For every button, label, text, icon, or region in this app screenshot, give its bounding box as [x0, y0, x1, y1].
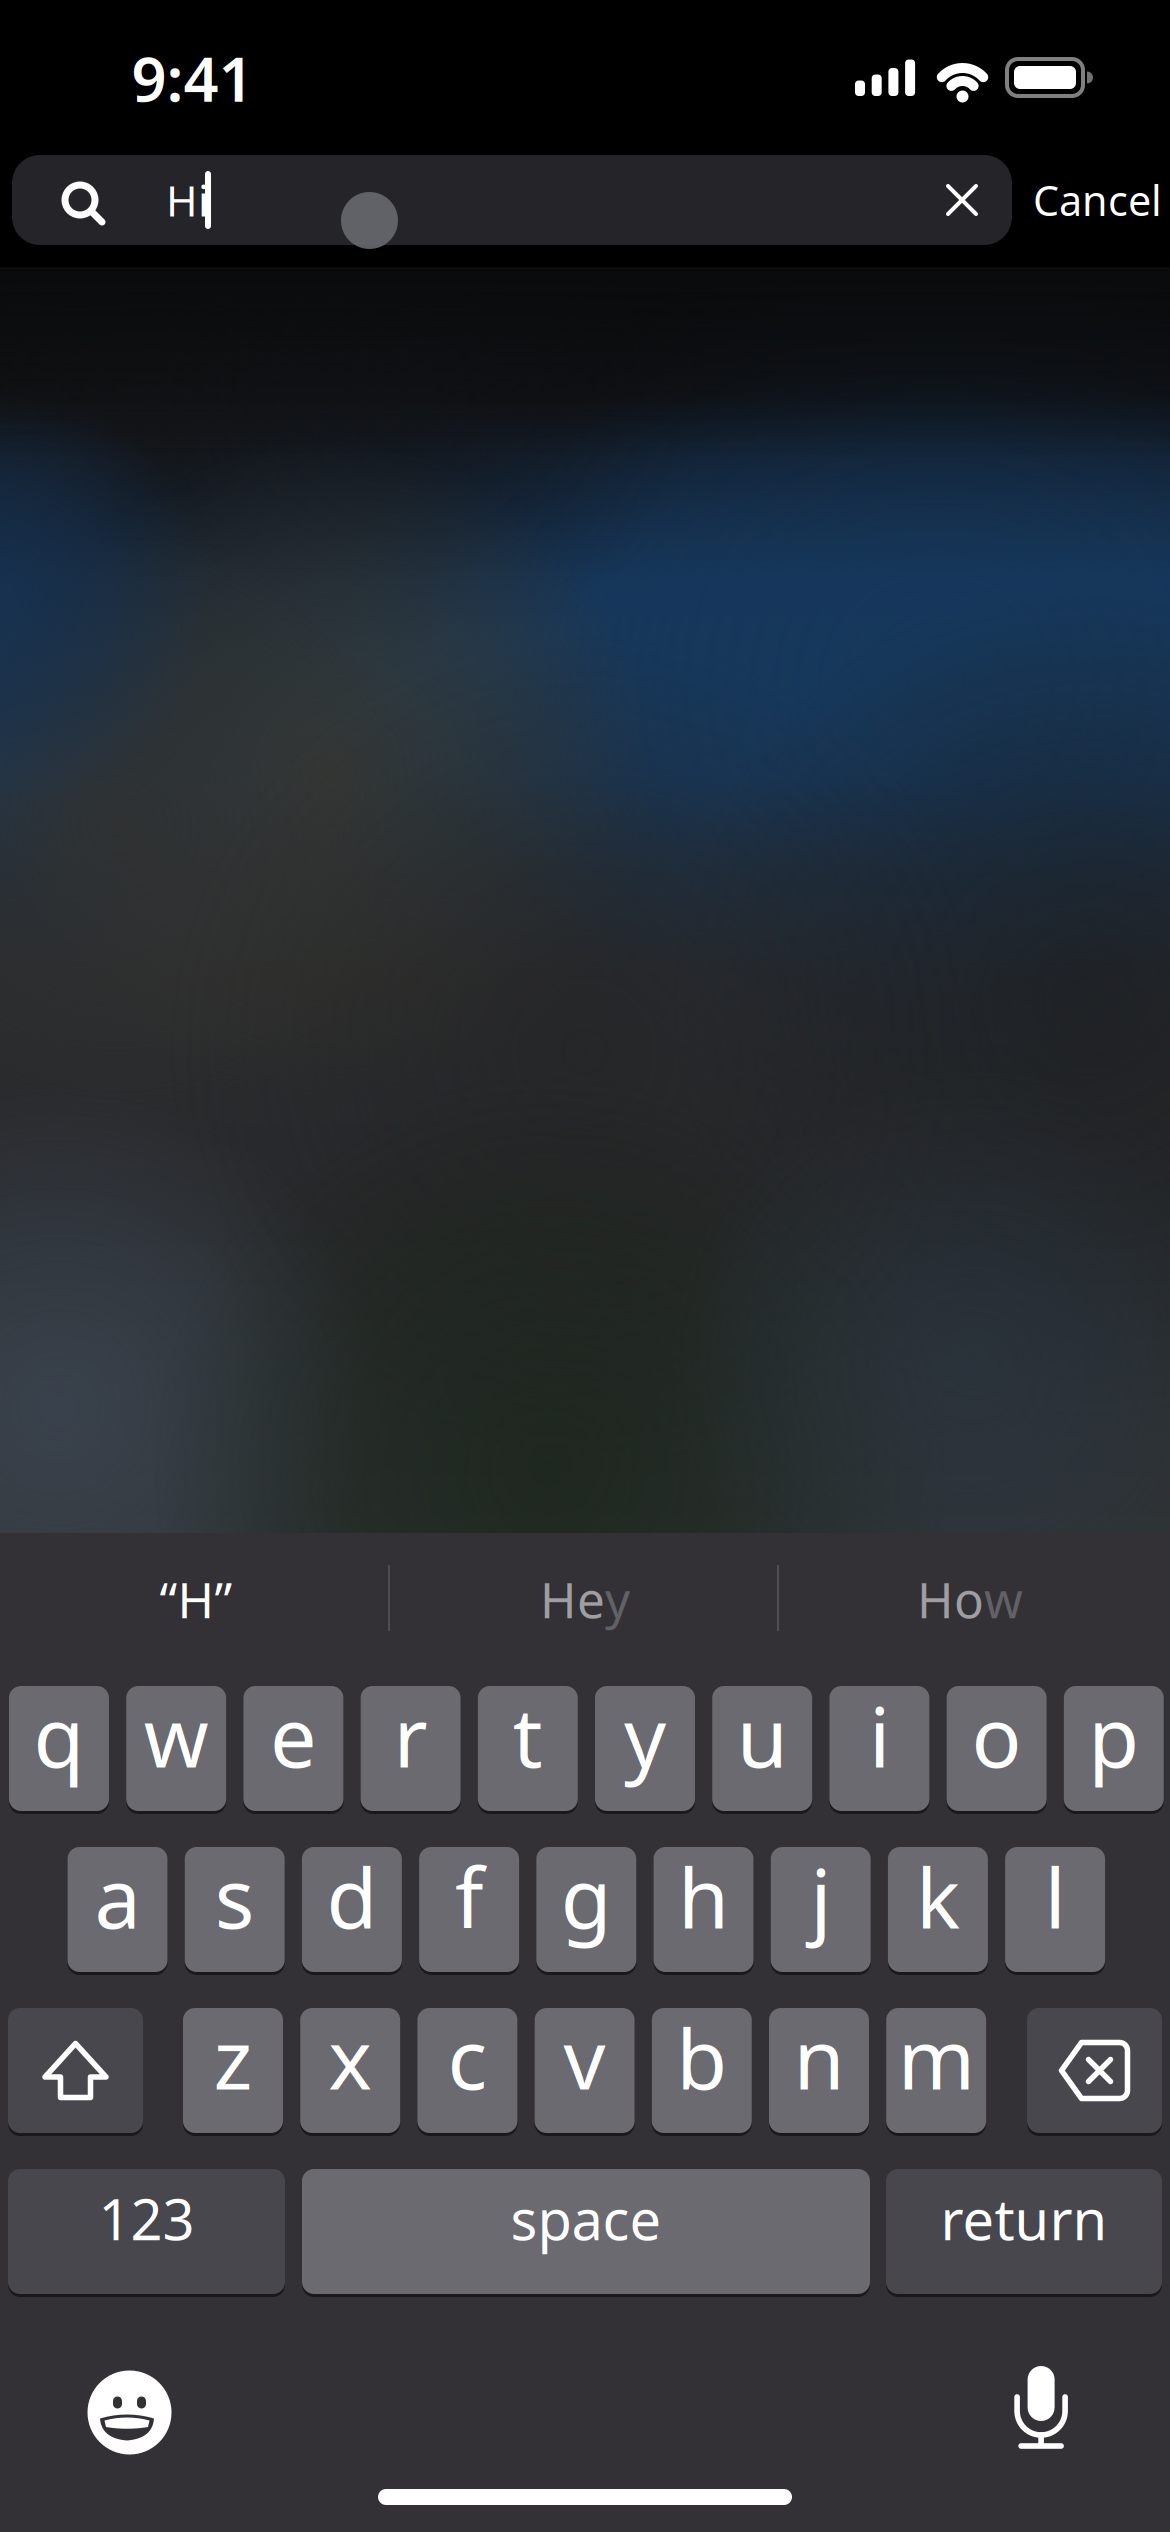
button[interactable]: 123 [8, 2169, 285, 2294]
staticText: 123 [98, 2181, 194, 2256]
button[interactable]: y [595, 1686, 695, 1811]
staticText: e [270, 1681, 317, 1790]
button[interactable]: Cancel [942, 172, 1162, 228]
staticText: He [540, 1566, 605, 1632]
button[interactable]: a [67, 1847, 167, 1972]
staticText: m [898, 2003, 975, 2112]
staticText: u [737, 1681, 788, 1790]
staticText: q [33, 1681, 84, 1790]
button[interactable]: q [9, 1686, 109, 1811]
staticText: Cancel [1033, 173, 1162, 227]
button[interactable]: l [1005, 1847, 1105, 1972]
button[interactable]: n [769, 2008, 869, 2133]
staticText: return [940, 2181, 1107, 2256]
button[interactable]: u [712, 1686, 812, 1811]
button[interactable]: return [886, 2169, 1162, 2294]
button[interactable]: Dictation [1013, 2366, 1069, 2452]
button[interactable]: c [417, 2008, 517, 2133]
button[interactable]: g [536, 1847, 636, 1972]
button[interactable]: Clear text [934, 172, 990, 228]
staticText: f [455, 1842, 483, 1951]
staticText: x [328, 2003, 372, 2112]
staticText: h [678, 1842, 729, 1951]
button[interactable]: “H” [159, 1566, 232, 1632]
staticText: i [869, 1681, 890, 1790]
button[interactable]: i [829, 1686, 929, 1811]
button[interactable]: f [419, 1847, 519, 1972]
staticText: l [1045, 1842, 1066, 1951]
staticText: j [810, 1842, 831, 1951]
button[interactable]: k [888, 1847, 988, 1972]
staticText: d [326, 1842, 377, 1951]
button[interactable]: b [652, 2008, 752, 2133]
button[interactable]: h [653, 1847, 753, 1972]
staticText: s [215, 1842, 255, 1951]
button[interactable]: m [886, 2008, 986, 2133]
button[interactable]: Ho [917, 1566, 1023, 1632]
staticText: a [94, 1842, 140, 1951]
button[interactable]: p [1064, 1686, 1164, 1811]
staticText: “H” [159, 1566, 232, 1632]
button[interactable]: o [947, 1686, 1047, 1811]
staticText: v [564, 2003, 606, 2112]
staticText: r [394, 1681, 428, 1790]
button[interactable]: Emoji [87, 2370, 171, 2454]
staticText: y [605, 1566, 630, 1632]
staticText: k [916, 1842, 960, 1951]
button[interactable]: d [302, 1847, 402, 1972]
staticText: z [213, 2003, 252, 2112]
button[interactable]: w [126, 1686, 226, 1811]
staticText: Ho [917, 1566, 984, 1632]
button[interactable]: Delete [1027, 2008, 1162, 2133]
staticText: w [144, 1681, 209, 1790]
staticText: b [676, 2003, 727, 2112]
staticText: o [972, 1681, 1022, 1790]
button[interactable]: Shift [8, 2008, 143, 2133]
button[interactable]: j [771, 1847, 871, 1972]
button[interactable]: v [535, 2008, 635, 2133]
staticText: n [793, 2003, 844, 2112]
button[interactable]: s [185, 1847, 285, 1972]
button[interactable]: r [361, 1686, 461, 1811]
staticText: c [447, 2003, 487, 2112]
button[interactable]: z [183, 2008, 283, 2133]
staticText: y [624, 1681, 666, 1790]
button[interactable]: space [302, 2169, 870, 2294]
button[interactable]: He [540, 1566, 630, 1632]
staticText: space [510, 2181, 661, 2256]
staticText: g [561, 1842, 612, 1951]
staticText: 9:41 [131, 37, 253, 119]
staticText: t [513, 1681, 543, 1790]
staticText: p [1088, 1681, 1139, 1790]
staticText: w [984, 1566, 1023, 1632]
staticText: Hi [166, 172, 209, 228]
button[interactable]: t [478, 1686, 578, 1811]
button[interactable]: x [300, 2008, 400, 2133]
button[interactable]: e [243, 1686, 343, 1811]
button[interactable]: Hi [12, 155, 1012, 245]
